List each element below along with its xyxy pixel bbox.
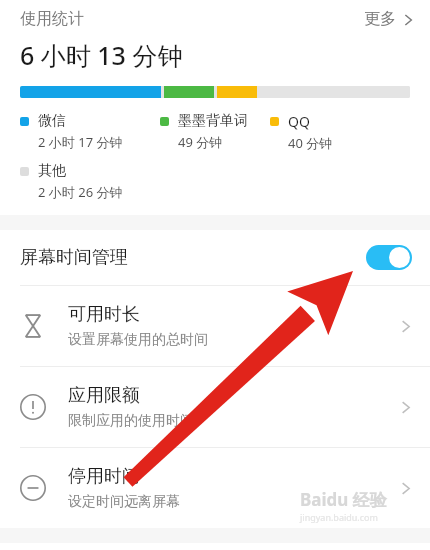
button[interactable]: 屏幕时间管理 [0,230,430,285]
staticText: 49 分钟 [178,133,223,151]
staticText: 应用限额 [68,384,140,407]
button[interactable]: 可用时长 [0,286,430,366]
staticText: 可用时长 [68,303,140,326]
staticText: 停用时间 [68,465,140,488]
staticText: QQ [288,112,310,131]
button[interactable]: 屏幕时间管理开关 [366,245,412,270]
staticText: 墨墨背单词 [178,112,248,130]
staticText: 使用统计 [20,9,84,29]
staticText: jingyan.baidu.com [300,511,378,523]
button[interactable]: 应用限额 [0,367,430,447]
staticText: 6 小时 13 分钟 [20,38,183,72]
staticText: 2 小时 17 分钟 [38,133,123,151]
button[interactable]: 使用统计 [0,0,430,26]
staticText: 屏幕时间管理 [20,246,128,269]
staticText: 40 分钟 [288,134,333,152]
staticText: 限制应用的使用时间 [68,412,194,430]
staticText: 设定时间远离屏幕 [68,493,180,511]
staticText: 微信 [38,112,66,130]
button[interactable]: 停用时间 [0,448,430,528]
staticText: 其他 [38,162,66,180]
staticText: 更多 [364,9,396,29]
staticText: Baidu 经验 [300,488,387,511]
staticText: 设置屏幕使用的总时间 [68,331,208,349]
staticText: 2 小时 26 分钟 [38,183,123,201]
